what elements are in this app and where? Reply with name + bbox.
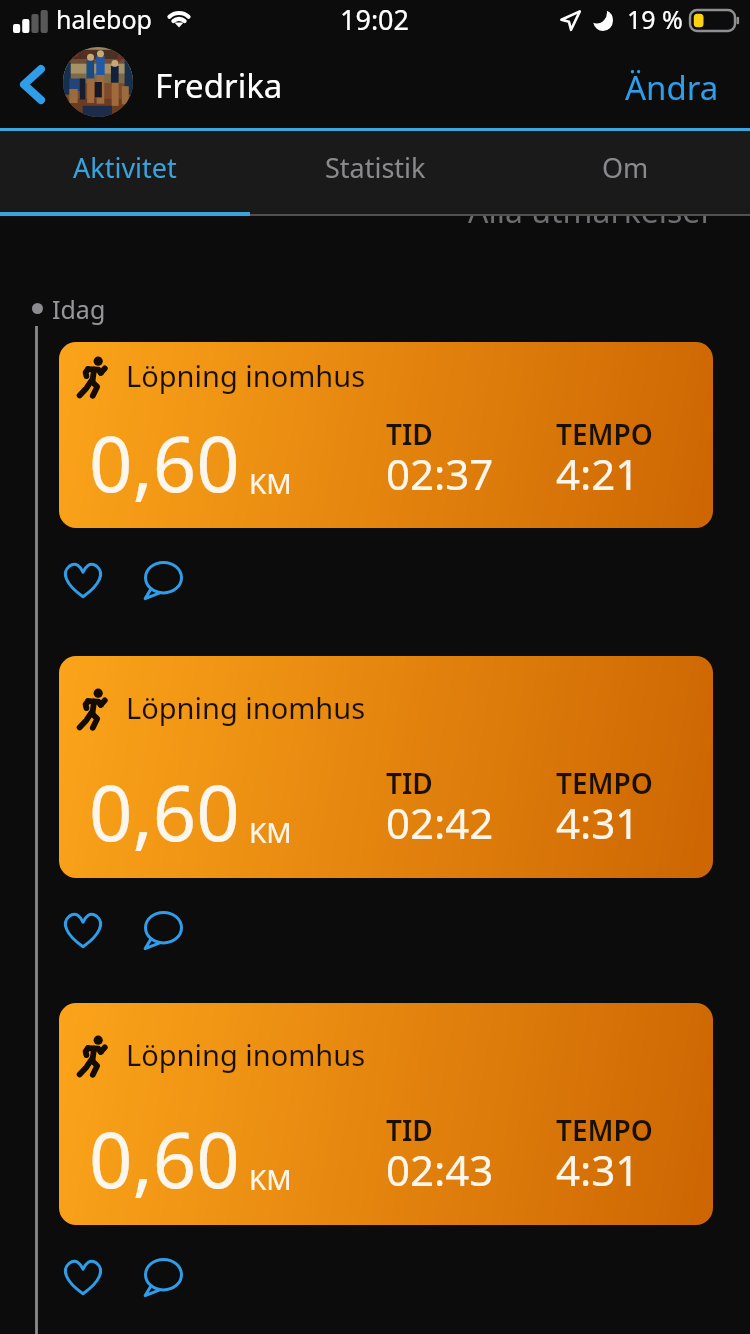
staticText: TID: [386, 1111, 433, 1149]
staticText: 19:02: [340, 1, 410, 38]
staticText: Fredrika: [155, 63, 283, 108]
staticText: 4:31: [556, 1141, 640, 1198]
staticText: 02:42: [386, 794, 494, 851]
staticText: TID: [386, 415, 433, 453]
staticText: 02:43: [386, 1141, 494, 1198]
staticText: 0,60: [89, 411, 240, 515]
staticText: 0,60: [89, 1107, 240, 1211]
staticText: 4:21: [556, 445, 640, 502]
button[interactable]: Aktivitet: [0, 131, 250, 212]
staticText: Alla utmärkelser: [468, 189, 714, 233]
staticText: KM: [249, 813, 292, 851]
button[interactable]: Like: [53, 1249, 113, 1305]
staticText: 02:37: [386, 445, 494, 502]
staticText: Ändra: [625, 65, 719, 110]
button[interactable]: Om: [500, 131, 750, 212]
staticText: TEMPO: [556, 415, 653, 453]
button[interactable]: Comment: [133, 1249, 193, 1305]
staticText: TID: [386, 764, 433, 802]
button[interactable]: Back: [0, 48, 63, 120]
staticText: Löpning inomhus: [126, 688, 366, 727]
staticText: Statistik: [325, 149, 426, 186]
button[interactable]: Comment: [133, 902, 193, 958]
button[interactable]: Comment: [133, 552, 193, 608]
staticText: TEMPO: [556, 1111, 653, 1149]
staticText: Idag: [52, 292, 106, 326]
staticText: KM: [249, 1160, 292, 1198]
staticText: 19 %: [627, 2, 683, 36]
button[interactable]: Löpning inomhus: [59, 656, 713, 878]
staticText: Löpning inomhus: [126, 1035, 366, 1074]
staticText: TEMPO: [556, 764, 653, 802]
staticText: Löpning inomhus: [126, 356, 366, 395]
staticText: halebop: [56, 2, 152, 36]
button[interactable]: Löpning inomhus: [59, 342, 713, 528]
button[interactable]: Ändra: [600, 48, 750, 121]
button[interactable]: Like: [53, 552, 113, 608]
staticText: 0,60: [89, 760, 240, 864]
staticText: Om: [602, 149, 649, 186]
staticText: 4:31: [556, 794, 640, 851]
button[interactable]: Statistik: [250, 131, 500, 212]
staticText: KM: [249, 464, 292, 502]
button[interactable]: Like: [53, 902, 113, 958]
staticText: Aktivitet: [73, 149, 177, 186]
button[interactable]: Löpning inomhus: [59, 1003, 713, 1225]
